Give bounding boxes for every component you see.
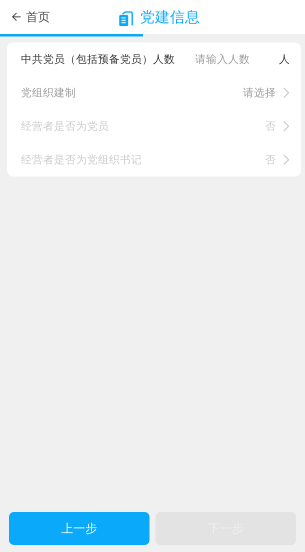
button[interactable]: 首页 <box>0 0 60 34</box>
button[interactable]: 党建信息 <box>119 0 200 34</box>
button[interactable]: 经营者是否为党组织书记 <box>7 143 301 176</box>
staticText: 否 <box>265 120 276 133</box>
button[interactable]: 经营者是否为党员 <box>7 109 301 143</box>
staticText: 否 <box>265 153 276 166</box>
staticText: 党组织建制 <box>21 86 76 99</box>
button[interactable]: 中共党员（包括预备党员）人数 <box>7 42 301 76</box>
staticText: 首页 <box>26 10 50 24</box>
staticText: 经营者是否为党员 <box>21 120 109 133</box>
staticText: 人 <box>279 53 290 66</box>
staticText: 请输入人数 <box>195 53 250 66</box>
staticText: 党建信息 <box>140 8 200 26</box>
staticText: 请选择 <box>243 86 276 99</box>
staticText: 上一步 <box>61 521 97 536</box>
staticText: 中共党员（包括预备党员）人数 <box>21 53 175 66</box>
button[interactable]: 上一步 <box>9 512 149 545</box>
button[interactable]: 党组织建制 <box>7 76 301 109</box>
staticText: 经营者是否为党组织书记 <box>21 153 142 166</box>
